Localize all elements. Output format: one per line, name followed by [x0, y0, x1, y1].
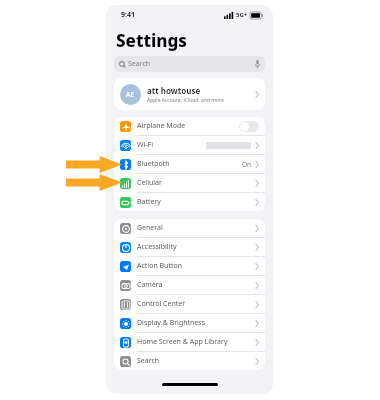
staticText: Battery: [137, 197, 161, 207]
button[interactable]: Display & Brightness: [114, 314, 265, 332]
button[interactable]: Wi-Fi: [114, 136, 265, 154]
button[interactable]: Airplane Mode toggle: [239, 121, 259, 132]
staticText: Accessibility: [137, 242, 177, 252]
staticText: Cellular: [137, 178, 162, 188]
staticText: Display & Brightness: [137, 318, 206, 328]
button[interactable]: Action Button: [114, 257, 265, 275]
other: Pointer to Wi-Fi: [66, 156, 122, 173]
staticText: 5G+: [236, 11, 248, 19]
button[interactable]: AE: [114, 78, 265, 110]
staticText: Wi-Fi: [137, 140, 154, 150]
staticText: Action Button: [137, 261, 183, 271]
button[interactable]: Camera: [114, 276, 265, 294]
button[interactable]: Accessibility: [114, 238, 265, 256]
staticText: Bluetooth: [137, 159, 170, 169]
staticText: Control Center: [137, 299, 186, 309]
staticText: Apple Account, iCloud, and more: [147, 97, 224, 104]
button[interactable]: Cellular: [114, 174, 265, 192]
staticText: att howtouse: [147, 85, 201, 96]
staticText: Home Screen & App Library: [137, 337, 228, 347]
staticText: Search: [128, 59, 151, 69]
button[interactable]: General: [114, 219, 265, 237]
other: Pointer to Bluetooth: [66, 174, 122, 191]
staticText: Airplane Mode: [137, 121, 186, 131]
button[interactable]: Search: [114, 352, 265, 370]
staticText: Search: [137, 356, 160, 366]
button[interactable]: Bluetooth: [114, 155, 265, 173]
button[interactable]: Airplane Mode: [114, 117, 265, 135]
staticText: AE: [126, 90, 135, 100]
button[interactable]: Search: [114, 56, 265, 72]
button[interactable]: Home Screen & App Library: [114, 333, 265, 351]
staticText: Camera: [137, 280, 163, 290]
staticText: Settings: [116, 29, 188, 52]
staticText: 9:41: [121, 10, 135, 20]
button[interactable]: Battery: [114, 193, 265, 211]
staticText: General: [137, 223, 163, 233]
staticText: On: [242, 160, 252, 169]
button[interactable]: Control Center: [114, 295, 265, 313]
